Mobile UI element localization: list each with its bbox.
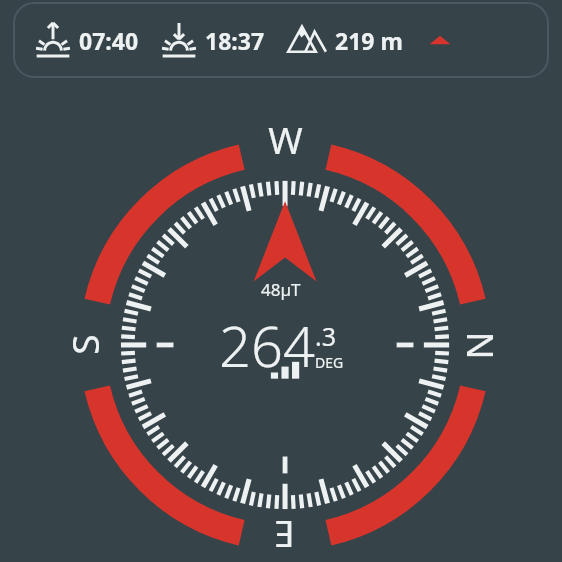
staticText: W <box>268 114 303 164</box>
staticText: 18:37 <box>205 25 265 56</box>
staticText: S <box>59 334 109 355</box>
button[interactable]: Sunrise <box>13 2 549 78</box>
staticText: DEG <box>315 353 344 372</box>
staticText: E <box>274 511 295 561</box>
staticText: N <box>457 331 507 360</box>
button[interactable]: Ascending <box>427 27 453 53</box>
staticText: 264 <box>219 307 315 383</box>
staticText: 07:40 <box>79 25 139 56</box>
staticText: 48µT <box>261 278 301 301</box>
other: Sunset <box>160 21 198 59</box>
other: Altitude <box>286 19 328 61</box>
staticText: .3 <box>315 319 337 353</box>
other: Sunrise <box>34 21 72 59</box>
staticText: 219 m <box>335 25 403 56</box>
